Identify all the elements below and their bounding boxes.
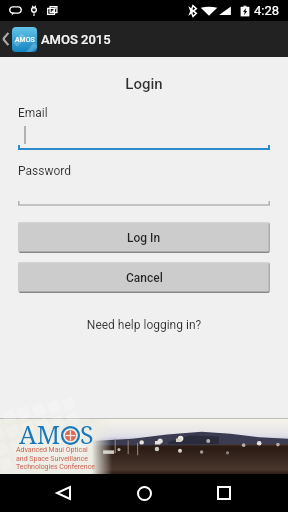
button[interactable]: Recent apps (200, 474, 248, 512)
staticText: Log In (127, 231, 161, 245)
staticText: Password (18, 164, 72, 178)
button[interactable]: Back (39, 474, 87, 512)
staticText: AMOS (15, 36, 35, 44)
button[interactable]: Home (120, 474, 168, 512)
staticText: Login (0, 75, 288, 93)
staticText: S (80, 417, 94, 451)
button[interactable]: Log In (18, 222, 270, 253)
staticText: AM (19, 417, 61, 451)
button[interactable]: Cancel (18, 262, 270, 293)
staticText: Cancel (126, 271, 163, 285)
button[interactable]: Need help logging in? (0, 318, 288, 332)
staticText: Advanced Maui Optical and Space Surveill… (16, 446, 96, 470)
staticText: AMOS 2015 (41, 32, 111, 47)
staticText: 4:28 (254, 3, 280, 18)
staticText: Email (18, 106, 48, 120)
button[interactable]: Navigate up (0, 21, 288, 57)
